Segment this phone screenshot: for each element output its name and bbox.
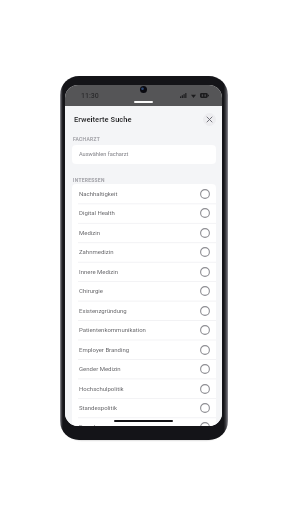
button[interactable]: Medizin — [72, 223, 216, 242]
staticText: Chirurgie — [79, 287, 103, 294]
staticText: FACHARZT — [73, 136, 100, 142]
button[interactable]: Nachhaltigkeit — [72, 184, 216, 203]
button[interactable]: Auswählen facharzt — [72, 145, 216, 164]
staticText: INTERESSEN — [73, 177, 105, 183]
staticText: Medizin — [79, 229, 101, 236]
staticText: Standespolitik — [79, 404, 117, 411]
staticText: Erweiterte Suche — [74, 115, 132, 124]
button[interactable]: Patientenkommunikation — [72, 320, 216, 339]
button[interactable]: Close — [203, 113, 216, 126]
button[interactable]: Digital Health — [72, 203, 216, 222]
button[interactable]: Employer Branding — [72, 340, 216, 359]
button[interactable]: Standespolitik — [72, 398, 216, 417]
button[interactable]: Forschung — [72, 417, 216, 426]
staticText: Hochschulpolitik — [79, 385, 124, 392]
staticText: Patientenkommunikation — [79, 326, 146, 333]
staticText: Zahnmedizin — [79, 248, 114, 255]
button[interactable]: Gender Medizin — [72, 359, 216, 378]
staticText: Forschung — [79, 423, 108, 426]
staticText: Gender Medizin — [79, 365, 121, 372]
button[interactable]: Innere Medizin — [72, 262, 216, 281]
button[interactable]: Existenzgründung — [72, 301, 216, 320]
staticText: Digital Health — [79, 209, 115, 216]
staticText: Nachhaltigkeit — [79, 190, 118, 197]
staticText: Existenzgründung — [79, 307, 127, 314]
staticText: Innere Medizin — [79, 268, 119, 275]
button[interactable]: Hochschulpolitik — [72, 379, 216, 398]
button[interactable]: Zahnmedizin — [72, 242, 216, 261]
button[interactable]: Chirurgie — [72, 281, 216, 300]
staticText: Employer Branding — [79, 346, 130, 353]
staticText: 11:30 — [81, 92, 99, 100]
staticText: Auswählen facharzt — [79, 151, 129, 158]
